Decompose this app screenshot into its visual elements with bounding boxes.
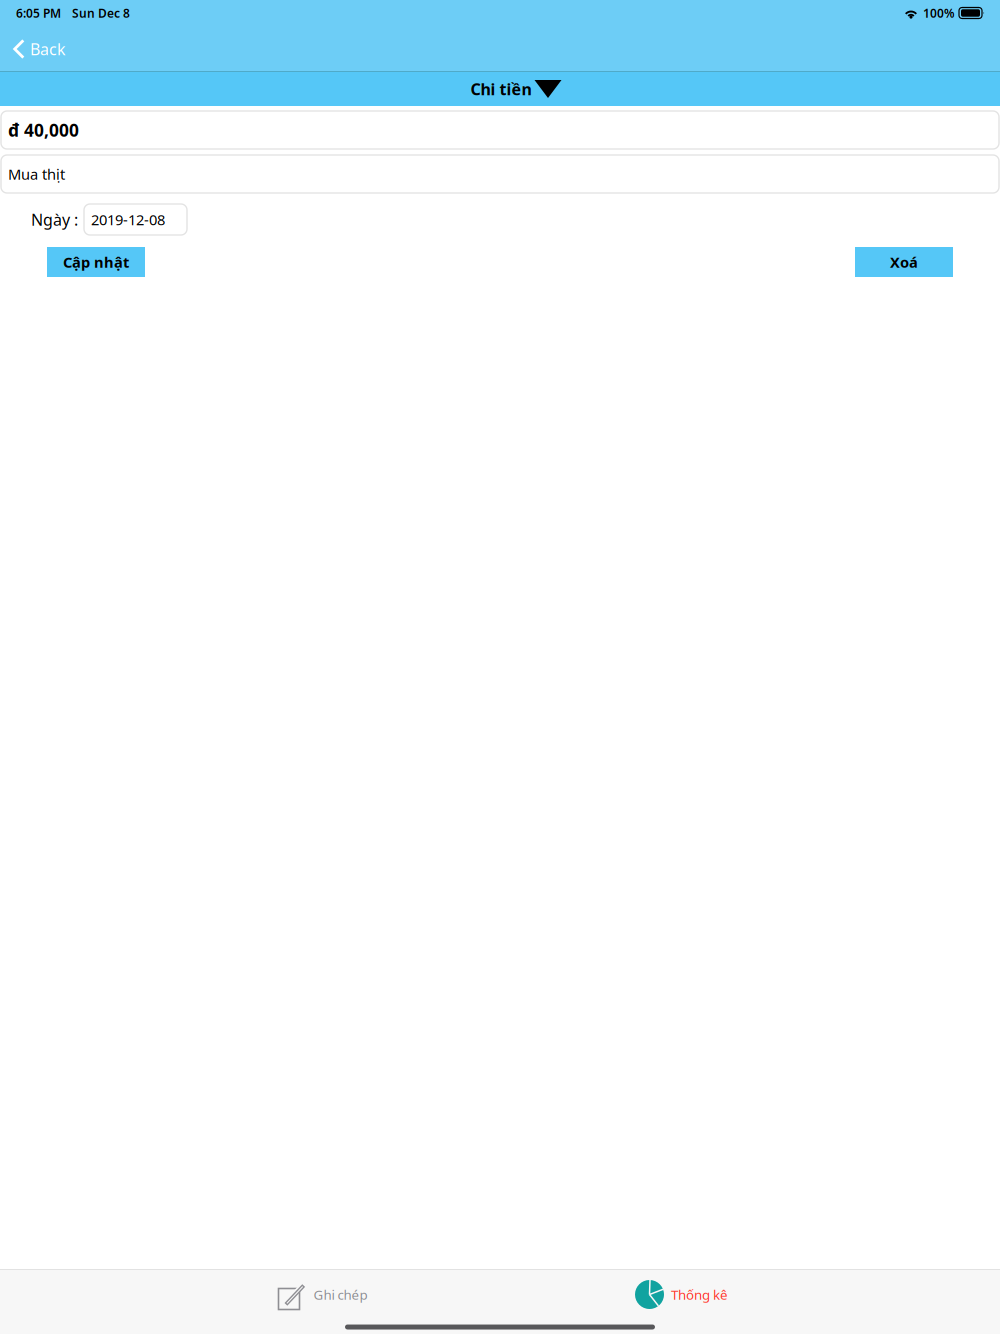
button[interactable]: Cập nhật <box>47 247 145 277</box>
staticText: Ngày : <box>31 209 78 230</box>
staticText: Sun Dec 8 <box>72 5 130 21</box>
staticText: Cập nhật <box>63 252 129 272</box>
staticText: Back <box>30 38 66 60</box>
staticText: Xoá <box>890 252 918 272</box>
staticText: 100% <box>923 5 955 21</box>
button[interactable]: Xoá <box>855 247 953 277</box>
button[interactable]: 2019-12-08 <box>84 204 187 235</box>
button[interactable]: Chi tiền <box>464 72 567 106</box>
staticText: Chi tiền <box>470 78 531 100</box>
staticText: Ghi chép <box>313 1286 367 1303</box>
staticText: 6:05 PM <box>16 5 61 21</box>
staticText: đ 40,000 <box>8 118 79 141</box>
staticText: Thống kê <box>671 1286 728 1303</box>
button[interactable]: Thống kê <box>573 1272 790 1316</box>
staticText: 2019-12-08 <box>91 210 165 229</box>
staticText: Mua thịt <box>8 164 65 184</box>
button[interactable]: Ghi chép <box>214 1272 431 1316</box>
button[interactable]: Back <box>0 26 76 72</box>
